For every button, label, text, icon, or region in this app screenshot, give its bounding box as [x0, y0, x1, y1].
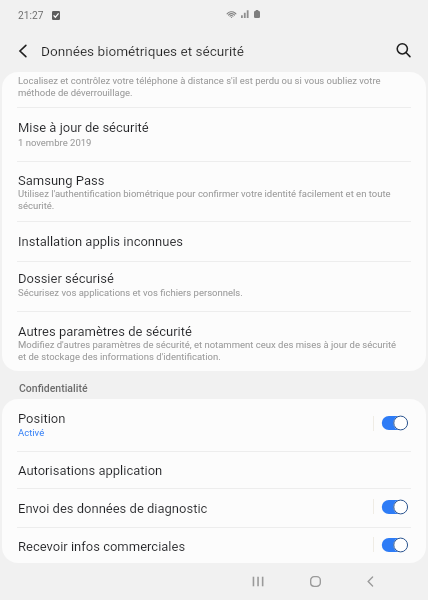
staticText: Installation applis inconnues	[18, 234, 366, 249]
button[interactable]: Installation applis inconnues	[2, 222, 426, 261]
button[interactable]: Position toggle	[378, 410, 410, 436]
button[interactable]: Envoi des données de diagnostic toggle	[378, 494, 410, 520]
button[interactable]: Dossier sécurisé	[2, 262, 426, 311]
staticText: Envoi des données de diagnostic	[18, 501, 366, 516]
staticText: Confidentialité	[19, 382, 88, 394]
button[interactable]: Recent apps	[239, 563, 276, 600]
staticText: Autres paramètres de sécurité	[18, 324, 366, 339]
staticText: Localisez et contrôlez votre téléphone à…	[18, 74, 402, 98]
button[interactable]: Back	[352, 563, 389, 600]
staticText: Mise à jour de sécurité	[18, 120, 366, 135]
button[interactable]: Search	[386, 33, 421, 68]
button[interactable]: Navigate back	[5, 33, 40, 68]
staticText: Utilisez l'authentification biométrique …	[18, 187, 402, 211]
button[interactable]: Mise à jour de sécurité	[2, 108, 426, 161]
button[interactable]: Recevoir infos commerciales toggle	[378, 532, 410, 558]
button[interactable]: Recevoir infos commerciales	[2, 528, 426, 563]
staticText: Samsung Pass	[18, 173, 366, 188]
staticText: Modifiez d'autres paramètres de sécurité…	[18, 338, 402, 362]
staticText: 1 novembre 2019	[18, 136, 399, 148]
button[interactable]: Position	[2, 399, 426, 451]
staticText: Position	[18, 411, 366, 426]
staticText: Sécurisez vos applications et vos fichie…	[18, 286, 402, 298]
button[interactable]: Autres paramètres de sécurité	[2, 312, 426, 368]
staticText: 21:27	[18, 10, 44, 21]
staticText: Recevoir infos commerciales	[18, 539, 366, 554]
staticText: Autorisations application	[18, 463, 366, 478]
staticText: Données biométriques et sécurité	[41, 43, 244, 59]
button[interactable]: Envoi des données de diagnostic	[2, 489, 426, 527]
staticText: Dossier sécurisé	[18, 271, 366, 286]
button[interactable]: Samsung Pass	[2, 162, 426, 221]
button[interactable]: Autorisations application	[2, 452, 426, 489]
button[interactable]: Home	[297, 563, 334, 600]
staticText: Activé	[18, 426, 399, 438]
